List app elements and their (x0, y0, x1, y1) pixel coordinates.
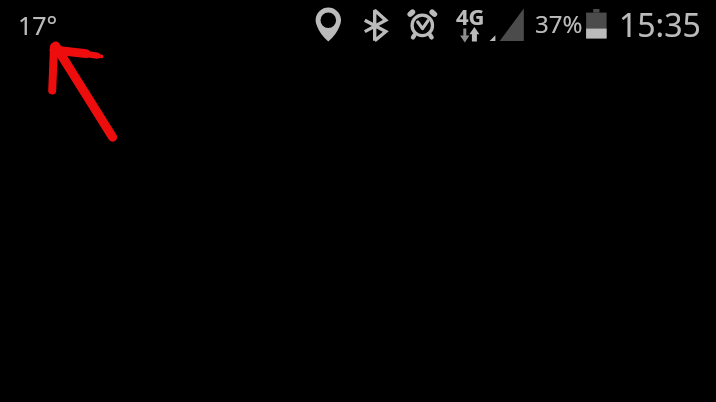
button[interactable]: Battery 37 percent (584, 4, 612, 44)
staticText: 17° (18, 8, 58, 42)
button[interactable]: 4G mobile data (453, 4, 485, 44)
button[interactable]: Alarm set (404, 4, 441, 44)
button[interactable]: Mobile signal (486, 4, 526, 44)
button[interactable]: Location (312, 4, 345, 44)
button[interactable]: 17° (10, 4, 64, 44)
button[interactable]: 15:35 (619, 3, 701, 47)
button[interactable]: Bluetooth (362, 4, 388, 44)
staticText: 4G (456, 1, 485, 31)
staticText: 37% (535, 7, 583, 40)
